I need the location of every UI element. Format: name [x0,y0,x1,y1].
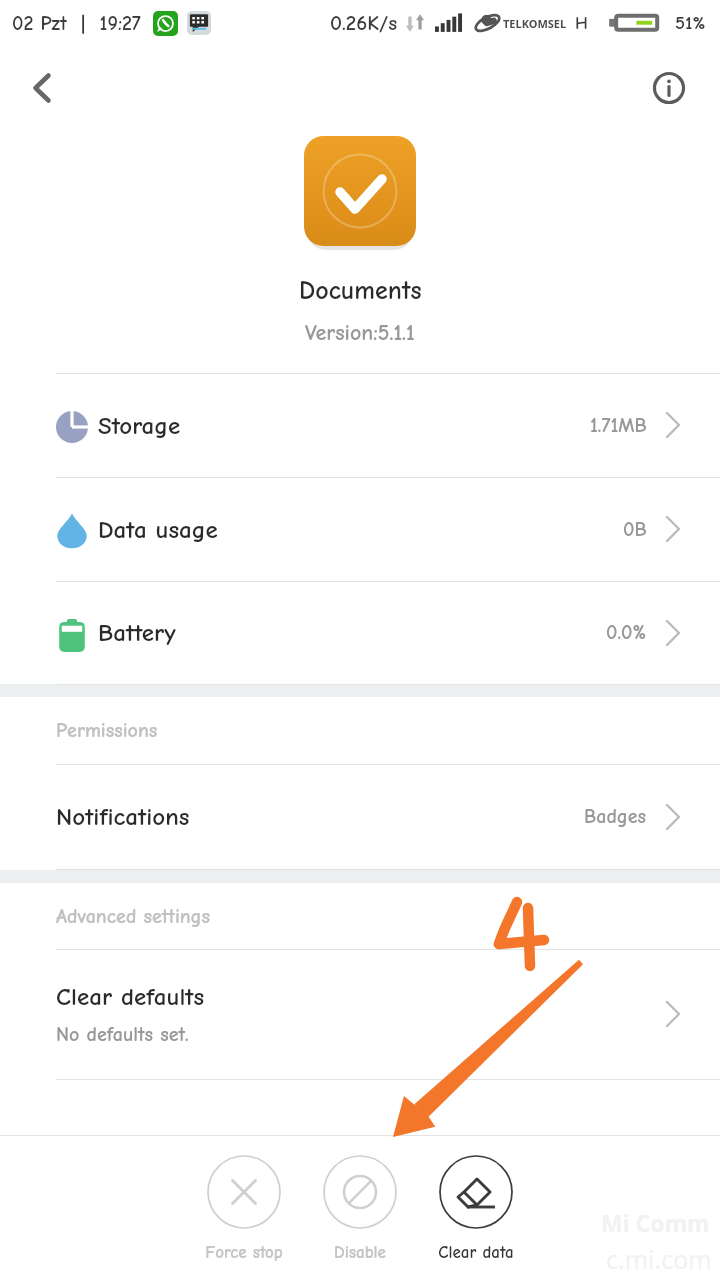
button[interactable]: Clear data [418,1155,534,1263]
staticText: Clear data [438,1243,514,1263]
staticText: Clear defaults [56,982,205,1011]
staticText: Badges [584,805,647,828]
button[interactable]: Back [20,66,64,110]
staticText: Notifications [56,802,190,831]
staticText: 0.0% [606,621,647,644]
staticText: Advanced settings [56,905,211,928]
staticText: Data usage [98,515,218,544]
staticText: 1.71MB [590,414,647,437]
button[interactable]: Notifications [0,764,720,869]
staticText: Version:5.1.1 [305,320,415,345]
staticText: c.mi.com [606,1242,712,1276]
staticText: No defaults set. [56,1023,189,1046]
staticText: Battery [98,618,176,647]
staticText: 0.26K/s [330,11,398,35]
staticText: 02 Pzt | 19:27 [12,12,141,35]
staticText: 0B [623,518,647,541]
staticText: Force stop [205,1243,283,1263]
staticText: Documents [299,276,422,306]
staticText: Permissions [56,719,158,742]
button[interactable]: App info [649,68,689,108]
staticText: H [575,13,588,34]
staticText: TELKOMSEL [503,16,567,31]
staticText: Disable [334,1243,386,1263]
button[interactable]: Storage [0,373,720,477]
button[interactable]: Clear defaults [0,949,720,1079]
button[interactable]: Battery [0,581,720,684]
button[interactable]: Data usage [0,477,720,581]
staticText: Mi Comm [601,1207,710,1238]
staticText: 51% [675,12,706,34]
button[interactable]: Disable [302,1155,418,1263]
button[interactable]: Force stop [186,1155,302,1263]
staticText: Storage [98,411,181,440]
